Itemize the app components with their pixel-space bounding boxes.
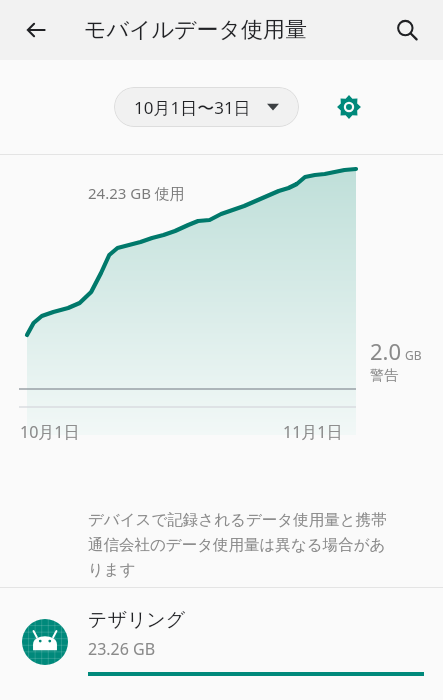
staticText: 2.0 <box>370 336 402 366</box>
staticText: 11月1日 <box>283 421 343 443</box>
button[interactable]: Settings <box>327 85 371 129</box>
staticText: GB <box>405 347 422 363</box>
staticText: 24.23 GB 使用 <box>88 183 185 203</box>
staticText: 10月1日 <box>20 421 80 443</box>
button[interactable]: テザリング <box>0 588 443 695</box>
staticText: テザリング <box>88 608 186 632</box>
staticText: デバイスで記録されるデータ使用量と携帯 <box>88 510 387 530</box>
button[interactable]: Search <box>383 6 431 54</box>
staticText: モバイルデータ使用量 <box>84 16 308 44</box>
staticText: 警告 <box>370 367 398 385</box>
staticText: 10月1日〜31日 <box>134 96 251 119</box>
button[interactable]: 10月1日〜31日 <box>114 87 299 127</box>
staticText: ります <box>88 560 136 580</box>
staticText: 23.26 GB <box>88 638 156 660</box>
staticText: 通信会社のデータ使用量は異なる場合があ <box>88 535 386 555</box>
button[interactable]: Back <box>12 6 60 54</box>
